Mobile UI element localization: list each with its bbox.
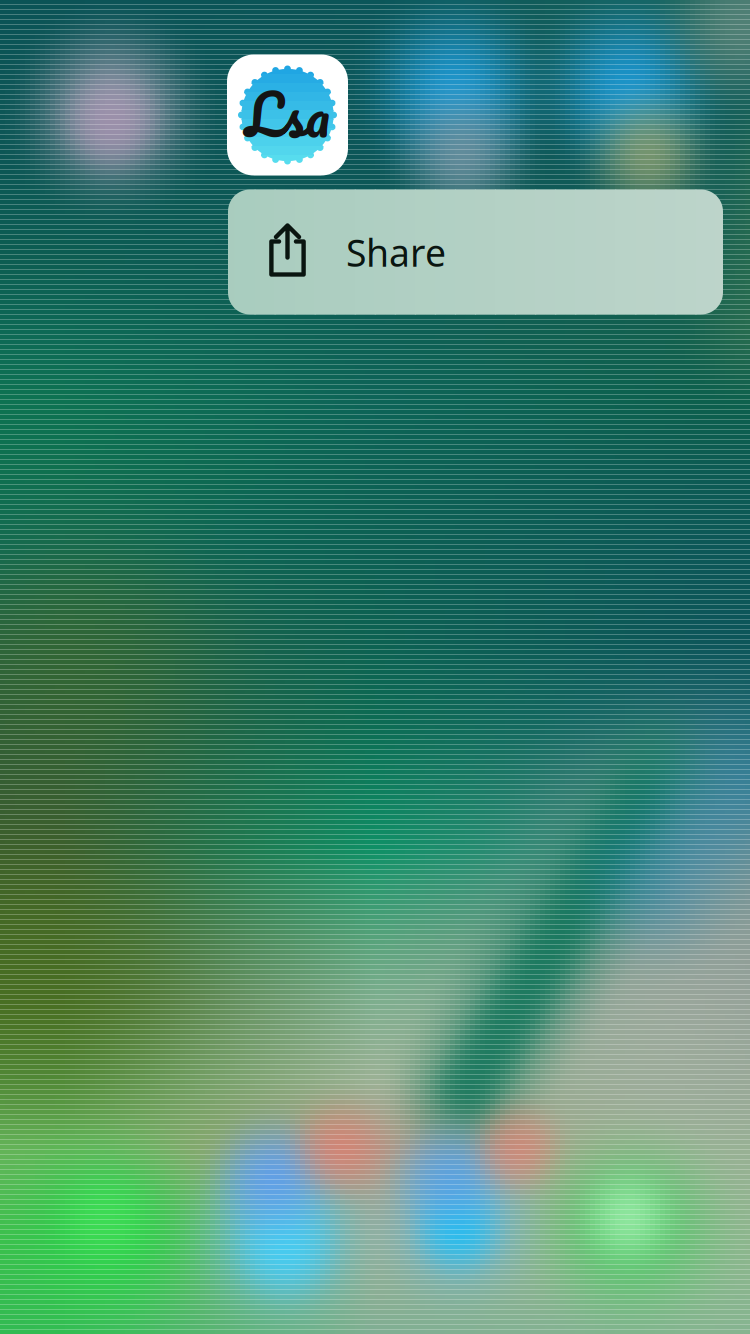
staticText: Lsa bbox=[245, 66, 330, 162]
staticText: Share bbox=[346, 227, 446, 277]
button[interactable]: Share bbox=[228, 189, 723, 314]
